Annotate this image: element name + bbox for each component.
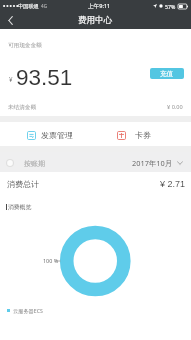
staticText: 上午9:11: [88, 2, 111, 10]
staticText: 云服务器ECS: [13, 307, 43, 314]
staticText: 发票管理: [41, 130, 73, 140]
staticText: 57%: [165, 3, 176, 10]
staticText: ¥: [9, 75, 13, 83]
button[interactable]: 按账期: [0, 152, 191, 172]
staticText: ¥ 2.71: [160, 179, 186, 189]
staticText: 卡券: [135, 130, 151, 140]
staticText: 4G: [41, 3, 47, 9]
staticText: 中国联通: [18, 3, 39, 10]
staticText: 消费概览: [8, 203, 32, 210]
button[interactable]: 云服务器ECS: [7, 307, 43, 314]
staticText: 消费总计: [7, 179, 39, 189]
staticText: 93.51: [16, 65, 73, 90]
staticText: 按账期: [24, 159, 45, 168]
staticText: 可用现金金额: [8, 42, 42, 49]
button[interactable]: 发票管理: [0, 122, 95, 146]
staticText: 未结清金额: [8, 104, 36, 111]
staticText: ¥ 0.00: [167, 103, 183, 111]
staticText: 费用中心: [78, 15, 113, 26]
staticText: 充值: [160, 70, 174, 78]
staticText: 100 %: [43, 257, 59, 264]
button[interactable]: 充值: [150, 68, 184, 79]
button[interactable]: 卡券: [95, 122, 191, 146]
button[interactable]: Back: [0, 12, 20, 29]
staticText: 2017年10月: [132, 158, 173, 168]
